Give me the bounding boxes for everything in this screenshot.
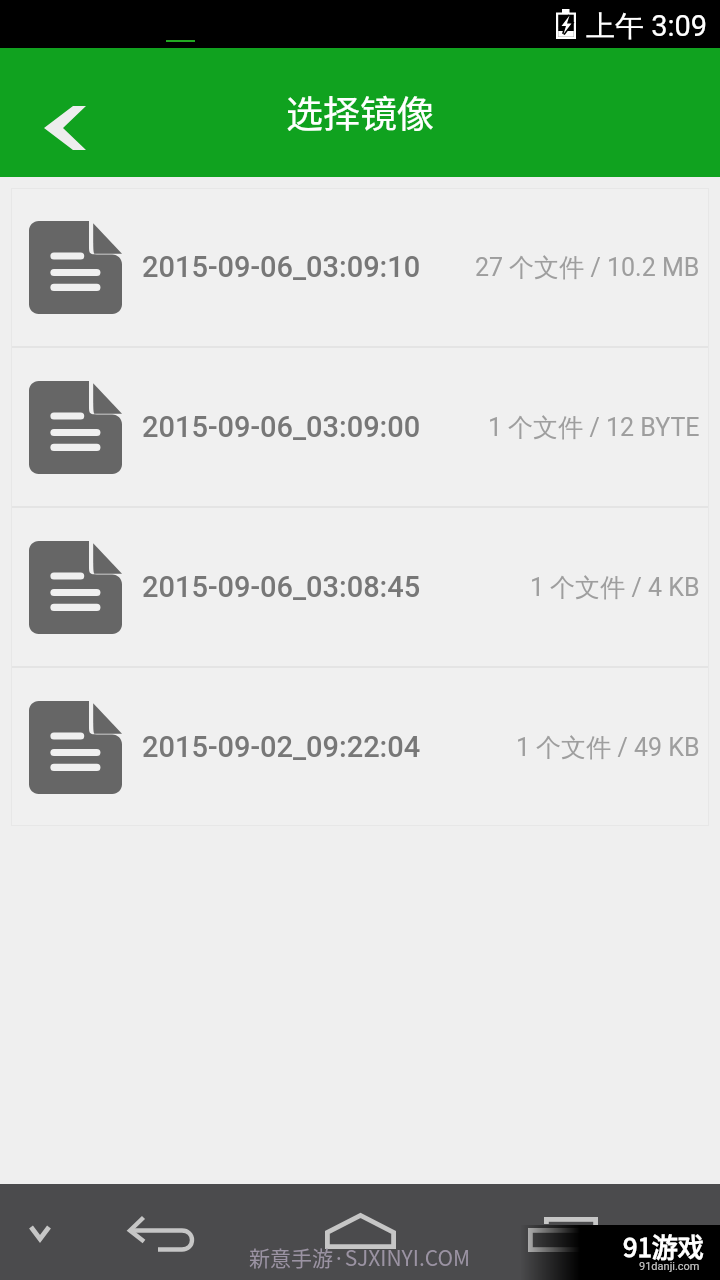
staticText: 91游戏 bbox=[623, 1227, 704, 1265]
staticText: 选择镜像 bbox=[286, 85, 434, 139]
staticText: 2015-09-06_03:08:45 bbox=[142, 570, 421, 604]
button[interactable]: Home bbox=[300, 1184, 412, 1280]
staticText: 2015-09-06_03:09:00 bbox=[142, 410, 421, 444]
staticText: 2015-09-06_03:09:10 bbox=[142, 250, 421, 284]
staticText: 1 个文件 / 12 BYTE bbox=[488, 412, 700, 443]
staticText: 上午 3:09 bbox=[586, 8, 708, 45]
staticText: 91danji.com bbox=[639, 1260, 700, 1273]
button[interactable]: Hide keyboard bbox=[0, 1184, 80, 1280]
staticText: 2015-09-02_09:22:04 bbox=[142, 730, 421, 764]
staticText: 1 个文件 / 49 KB bbox=[516, 732, 700, 763]
button[interactable]: 2015-09-06_03:08:45 bbox=[11, 508, 709, 666]
button[interactable]: Back bbox=[14, 76, 114, 176]
button[interactable]: Back bbox=[102, 1184, 212, 1280]
button[interactable]: 2015-09-06_03:09:00 bbox=[11, 348, 709, 506]
button[interactable]: 2015-09-06_03:09:10 bbox=[11, 188, 709, 346]
staticText: 1 个文件 / 4 KB bbox=[530, 572, 700, 603]
staticText: 新意手游·SJXINYI.COM bbox=[249, 1242, 471, 1272]
staticText: 27 个文件 / 10.2 MB bbox=[475, 252, 700, 283]
button[interactable]: Recent apps bbox=[500, 1184, 615, 1280]
button[interactable]: 2015-09-02_09:22:04 bbox=[11, 668, 709, 826]
